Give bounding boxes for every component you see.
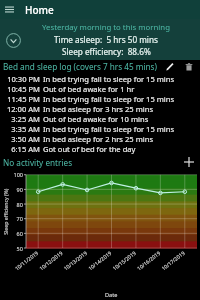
button[interactable]: 10:30 PM [0,74,200,84]
staticText: 10:45 PM [6,84,40,94]
staticText: Home [25,3,54,17]
button[interactable]: Open navigation menu [0,0,19,19]
button[interactable]: Delete log [181,60,197,73]
staticText: Out of bed awake for 1 hr [43,84,135,94]
button[interactable]: 6:15 AM [0,144,200,154]
staticText: 10:30 PM [6,74,40,84]
button[interactable]: Add activity entry [180,154,198,170]
button[interactable]: 3:50 AM [0,134,200,144]
staticText: Out of bed awake for 10 mins [43,114,149,124]
button[interactable]: Edit log [161,60,177,73]
staticText: In bed trying fall to sleep for 15 mins [43,124,175,134]
button[interactable]: 3:35 AM [0,124,200,134]
staticText: In bed asleep for 3 hrs 25 mins [43,104,154,114]
staticText: 11:45 PM [6,94,40,104]
staticText: In bed trying fall to sleep for 15 mins [43,94,175,104]
staticText: Got out of bed for the day [43,144,136,154]
button[interactable]: 10:45 PM [0,84,200,94]
button[interactable]: Expand summary [0,27,26,53]
staticText: 3:50 AM [6,134,40,144]
staticText: Time asleep: 5 hrs 50 mins [54,34,158,45]
staticText: 3:25 AM [6,114,40,124]
button[interactable]: 12:00 AM [0,104,200,114]
staticText: Bed and sleep log (covers 7 hrs 45 mins) [3,61,161,72]
staticText: 12:00 AM [6,104,40,114]
button[interactable]: 3:25 AM [0,114,200,124]
staticText: In bed trying fall to sleep for 15 mins [43,74,175,84]
staticText: 6:15 AM [6,144,40,154]
staticText: In bed asleep for 2 hrs 25 mins [43,134,154,144]
staticText: Yesterday morning to this morning [42,22,170,33]
staticText: Sleep efficiency: 88.6% [62,46,151,57]
button[interactable]: 11:45 PM [0,94,200,104]
staticText: No activity entries [3,157,180,168]
staticText: 3:35 AM [6,124,40,134]
